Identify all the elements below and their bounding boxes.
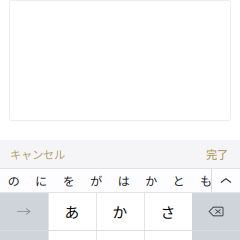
staticText: 完了 — [206, 146, 228, 162]
staticText: を — [63, 172, 75, 189]
button[interactable]: も — [192, 169, 220, 192]
staticText: か — [112, 201, 127, 222]
staticText: が — [90, 172, 102, 189]
staticText: あ — [64, 201, 79, 222]
button[interactable]: 完了 — [198, 140, 240, 168]
button[interactable]: 候補を展開 — [212, 169, 240, 192]
button[interactable]: キャンセル — [0, 140, 73, 168]
button[interactable]: の — [0, 169, 27, 192]
button[interactable]: を — [55, 169, 82, 192]
staticText: は — [118, 172, 130, 189]
staticText: と — [173, 172, 185, 189]
staticText: キャンセル — [10, 146, 65, 162]
staticText: に — [35, 172, 47, 189]
button[interactable]: と — [165, 169, 192, 192]
button[interactable]: さ — [144, 193, 192, 230]
staticText: さ — [160, 201, 175, 222]
staticText: も — [200, 172, 212, 189]
button[interactable]: あ — [48, 193, 96, 230]
staticText: か — [145, 172, 157, 189]
staticText: の — [8, 172, 20, 189]
button[interactable]: が — [82, 169, 110, 192]
button[interactable]: か — [96, 193, 144, 230]
button[interactable]: に — [27, 169, 55, 192]
button[interactable]: 次候補 — [0, 193, 48, 230]
button[interactable]: か — [137, 169, 165, 192]
button[interactable]: 削除 — [192, 193, 240, 230]
button[interactable]: は — [110, 169, 137, 192]
